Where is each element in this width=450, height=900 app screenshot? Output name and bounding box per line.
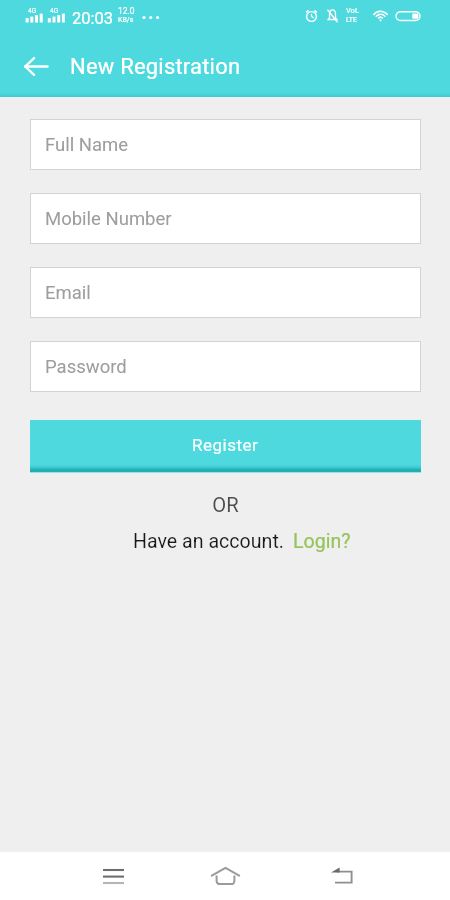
- staticText: Have an account.: [133, 530, 284, 553]
- button[interactable]: Email: [30, 267, 421, 318]
- button[interactable]: Password: [30, 341, 421, 392]
- staticText: OR: [30, 493, 421, 517]
- staticText: 4G: [28, 7, 37, 15]
- button[interactable]: Back: [320, 854, 365, 898]
- button[interactable]: Home: [203, 854, 248, 898]
- staticText: 20:03: [72, 9, 114, 28]
- staticText: 12.0: [118, 6, 135, 16]
- button[interactable]: Login?: [293, 530, 351, 553]
- staticText: Full Name: [45, 134, 129, 156]
- button[interactable]: Register: [30, 420, 421, 473]
- staticText: New Registration: [70, 54, 241, 80]
- staticText: Login?: [293, 530, 351, 553]
- staticText: Register: [192, 435, 259, 455]
- staticText: KB/s: [118, 16, 134, 24]
- staticText: Mobile Number: [45, 208, 172, 230]
- button[interactable]: Full Name: [30, 119, 421, 170]
- button[interactable]: Menu: [91, 854, 136, 898]
- button[interactable]: Back: [14, 44, 58, 88]
- staticText: Password: [45, 356, 127, 378]
- staticText: Email: [45, 282, 91, 304]
- staticText: LTE: [346, 16, 357, 24]
- staticText: 4G: [50, 7, 59, 15]
- button[interactable]: Mobile Number: [30, 193, 421, 244]
- staticText: VoL: [346, 6, 359, 15]
